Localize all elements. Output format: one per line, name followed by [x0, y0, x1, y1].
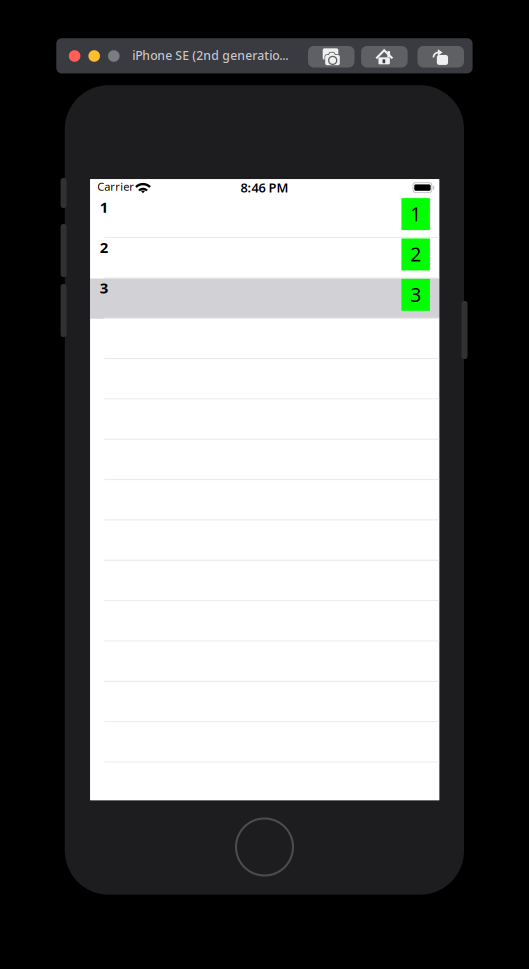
staticText: 2: [100, 237, 109, 257]
staticText: Carrier: [97, 179, 134, 194]
button[interactable]: 3: [90, 278, 439, 319]
button[interactable]: Close: [69, 50, 80, 62]
staticText: 3: [100, 277, 109, 298]
staticText: 1: [100, 197, 109, 217]
button[interactable]: Minimize: [88, 50, 100, 62]
button[interactable]: Rotate: [417, 46, 464, 67]
button[interactable]: 1: [90, 198, 439, 238]
staticText: 1: [410, 200, 421, 227]
staticText: 8:46 PM: [241, 179, 289, 196]
staticText: 2: [410, 241, 421, 267]
button[interactable]: Screenshot: [308, 46, 354, 67]
staticText: 3: [410, 281, 421, 307]
button[interactable]: Zoom: [108, 50, 120, 62]
button[interactable]: 2: [90, 238, 439, 278]
button[interactable]: Home: [361, 46, 408, 67]
staticText: iPhone SE (2nd generatio...: [132, 47, 288, 64]
